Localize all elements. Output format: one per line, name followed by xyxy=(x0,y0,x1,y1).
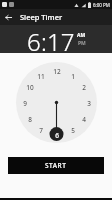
staticText: 12 xyxy=(53,67,61,76)
button[interactable]: START xyxy=(8,157,104,174)
staticText: 9 xyxy=(23,99,27,108)
staticText: 8 xyxy=(28,115,32,124)
button[interactable]: 6 xyxy=(27,25,41,53)
button[interactable]: 17 xyxy=(47,25,75,53)
staticText: 4 xyxy=(82,115,86,124)
staticText: 5 xyxy=(71,126,75,135)
staticText: Sleep Timer xyxy=(20,12,63,22)
staticText: 10 xyxy=(26,83,34,92)
button[interactable]: Back xyxy=(0,9,16,25)
staticText: 1 xyxy=(71,72,75,81)
staticText: 6 xyxy=(55,131,59,140)
staticText: 3 xyxy=(87,99,91,108)
staticText: 2 xyxy=(82,83,86,92)
staticText: 11 xyxy=(37,72,45,81)
button[interactable]: 1 xyxy=(16,62,97,143)
button[interactable]: AM xyxy=(77,32,86,39)
button[interactable]: PM xyxy=(78,40,86,47)
staticText: : xyxy=(41,25,47,53)
staticText: 7 xyxy=(39,126,43,135)
staticText: 6:00 PM xyxy=(93,2,110,8)
staticText: START xyxy=(45,161,67,170)
